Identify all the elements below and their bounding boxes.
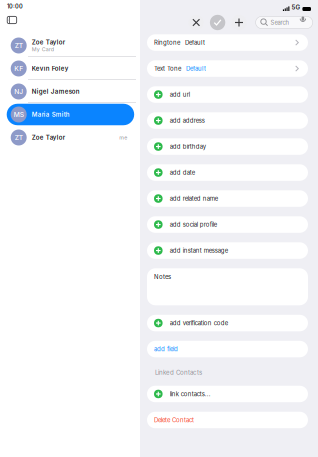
- button[interactable]: Done: [207, 14, 228, 31]
- button[interactable]: add instant message: [147, 242, 308, 259]
- button[interactable]: add address: [147, 112, 308, 129]
- button[interactable]: add url: [147, 86, 308, 103]
- staticText: Zoe Taylor: [32, 134, 65, 141]
- button[interactable]: ZT: [0, 126, 140, 149]
- button[interactable]: Delete Contact: [147, 412, 308, 428]
- staticText: Default: [186, 65, 206, 72]
- button[interactable]: add social profile: [147, 216, 308, 233]
- staticText: Kevin Foley: [32, 65, 69, 72]
- staticText: ZT: [15, 133, 23, 142]
- button[interactable]: Text Tone: [147, 60, 308, 77]
- button[interactable]: Toggle Sidebar: [3, 13, 21, 27]
- staticText: Delete Contact: [154, 416, 194, 424]
- button[interactable]: add verification code: [147, 315, 308, 331]
- button[interactable]: Add: [228, 14, 250, 31]
- button[interactable]: KF: [0, 57, 140, 80]
- staticText: add verification code: [170, 319, 228, 327]
- staticText: add instant message: [170, 247, 228, 254]
- staticText: Linked Contacts: [155, 369, 202, 376]
- staticText: link contacts...: [170, 390, 211, 398]
- button[interactable]: ZT: [0, 34, 140, 57]
- button[interactable]: Ringtone: [147, 34, 308, 51]
- button[interactable]: NJ: [0, 80, 140, 103]
- staticText: add date: [170, 169, 195, 176]
- staticText: add social profile: [170, 221, 217, 228]
- staticText: Notes: [154, 273, 171, 281]
- staticText: add related name: [170, 195, 218, 202]
- button[interactable]: MS: [0, 103, 140, 126]
- button[interactable]: Cancel: [185, 14, 207, 31]
- staticText: KF: [14, 64, 23, 73]
- button[interactable]: Search: [255, 16, 313, 29]
- staticText: 5G: [291, 4, 300, 11]
- staticText: 10:00: [7, 3, 23, 10]
- staticText: add field: [154, 345, 178, 353]
- staticText: add birthday: [170, 143, 206, 150]
- staticText: My Card: [32, 46, 54, 52]
- staticText: Nigel Jameson: [32, 88, 80, 95]
- button[interactable]: add birthday: [147, 138, 308, 155]
- staticText: me: [119, 134, 127, 141]
- staticText: Maria Smith: [32, 111, 70, 118]
- staticText: Text Tone: [154, 65, 181, 72]
- button[interactable]: link contacts...: [147, 386, 308, 402]
- staticText: ZT: [15, 41, 23, 50]
- button[interactable]: add field: [147, 341, 308, 357]
- staticText: Ringtone: [154, 39, 180, 46]
- button[interactable]: add date: [147, 164, 308, 181]
- button[interactable]: add related name: [147, 190, 308, 207]
- staticText: add url: [170, 91, 190, 98]
- staticText: add address: [170, 117, 205, 124]
- staticText: NJ: [14, 87, 23, 96]
- staticText: Search: [271, 19, 289, 26]
- staticText: Default: [185, 39, 205, 46]
- staticText: Zoe Taylor: [32, 39, 65, 46]
- staticText: MS: [14, 110, 24, 119]
